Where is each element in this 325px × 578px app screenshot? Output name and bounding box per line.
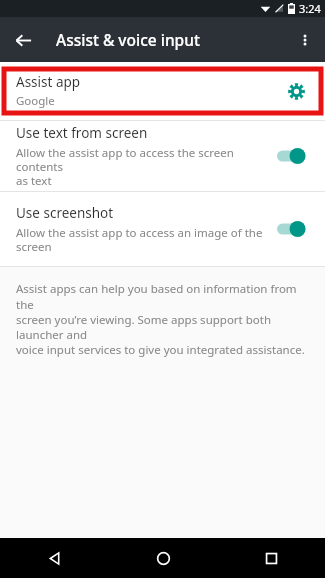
button[interactable]: More options	[289, 24, 321, 56]
button[interactable]: Use text from screen	[0, 121, 325, 191]
staticText: uantrimang	[98, 144, 265, 185]
button[interactable]: Assist app settings	[281, 76, 311, 106]
button[interactable]: Back	[7, 24, 39, 56]
staticText: Use text from screen	[16, 124, 148, 142]
staticText: 3:24	[299, 1, 321, 16]
button[interactable]: Use screenshot	[0, 192, 325, 266]
staticText: Assist apps can help you based on inform…	[16, 281, 309, 357]
button[interactable]: Back	[0, 538, 109, 578]
staticText: Allow the assist app to access the scree…	[16, 145, 263, 188]
button[interactable]: Use text from screen	[271, 141, 315, 171]
staticText: Assist & voice input	[56, 29, 200, 50]
button[interactable]: Use screenshot	[271, 214, 315, 244]
button[interactable]: Assist app	[0, 62, 325, 120]
staticText: Use screenshot	[16, 204, 114, 222]
button[interactable]: Recent apps	[217, 538, 325, 578]
staticText: Allow the assist app to access an image …	[16, 225, 263, 254]
button[interactable]: Home	[109, 538, 217, 578]
staticText: Google	[16, 93, 55, 109]
staticText: Assist app	[16, 73, 81, 91]
